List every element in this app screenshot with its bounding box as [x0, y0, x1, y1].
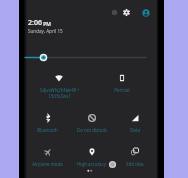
button[interactable]: Edit tiles [113, 142, 156, 168]
staticText: Do not disturb [77, 127, 107, 133]
staticText: Edit tiles [126, 161, 144, 167]
staticText: PM [42, 21, 51, 28]
button[interactable]: Brightness [19, 48, 164, 65]
button[interactable]: Settings [121, 7, 132, 18]
staticText: Airplane mode [32, 161, 63, 167]
button[interactable]: User account [140, 7, 152, 19]
button[interactable]: Auto rotate [90, 68, 154, 98]
staticText: Bluetooth [37, 127, 58, 133]
staticText: Data [130, 127, 140, 133]
button[interactable]: 2:06 [28, 18, 63, 34]
button[interactable]: Mobile data [113, 108, 156, 134]
staticText: 2:06 [28, 18, 42, 28]
staticText: SdjvsWfs2hNwrW • [40, 87, 79, 93]
button[interactable]: Location [70, 142, 113, 168]
button[interactable]: Bluetooth [26, 108, 69, 134]
staticText: 15cJfsZws1 [48, 93, 71, 98]
staticText: Portrait [114, 87, 130, 93]
button[interactable]: Do not disturb [70, 108, 113, 134]
staticText: High accuracy [77, 161, 106, 167]
button[interactable]: Airplane mode [26, 142, 69, 168]
staticText: Sunday, April 15 [28, 28, 63, 34]
button[interactable]: Power [109, 7, 120, 18]
button[interactable]: Wi-Fi [27, 68, 91, 98]
